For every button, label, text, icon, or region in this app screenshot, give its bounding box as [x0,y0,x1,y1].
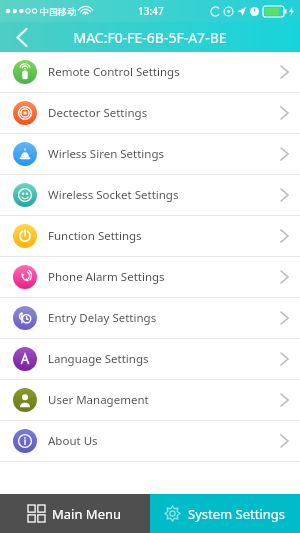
button[interactable]: About Us [0,421,300,461]
staticText: Wireless Socket Settings [48,187,179,203]
button[interactable]: Function Settings [0,216,300,256]
staticText: Wirless Siren Settings [48,146,165,162]
staticText: Main Menu [52,505,122,523]
button[interactable]: Remote Control Settings [0,52,300,92]
staticText: Remote Control Settings [48,64,180,80]
staticText: About Us [48,433,98,449]
staticText: 13:47 [138,4,164,18]
button[interactable]: Back [0,22,44,52]
staticText: Entry Delay Settings [48,310,157,326]
staticText: System Settings [188,505,286,523]
staticText: MAC:F0-FE-6B-5F-A7-BE [73,28,227,47]
button[interactable]: Entry Delay Settings [0,298,300,338]
button[interactable]: Wirless Siren Settings [0,134,300,174]
button[interactable]: Main Menu [0,494,150,533]
button[interactable]: Dectector Settings [0,93,300,133]
button[interactable]: Language Settings [0,339,300,379]
button[interactable]: System Settings [150,494,300,533]
staticText: Dectector Settings [48,105,148,121]
staticText: Language Settings [48,351,149,367]
staticText: Phone Alarm Settings [48,269,165,285]
button[interactable]: Wireless Socket Settings [0,175,300,215]
staticText: User Management [48,392,149,408]
button[interactable]: Phone Alarm Settings [0,257,300,297]
staticText: 中国移动 [40,6,76,17]
staticText: Function Settings [48,228,142,244]
button[interactable]: User Management [0,380,300,420]
